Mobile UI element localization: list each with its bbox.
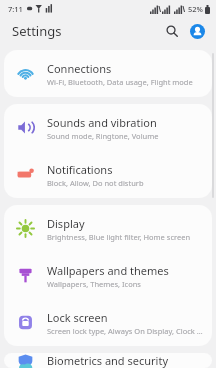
staticText: 52%: [188, 4, 203, 14]
staticText: Block, Allow, Do not disturb: [47, 178, 144, 188]
button[interactable]: Notifications: [4, 151, 212, 198]
button[interactable]: Account: [186, 20, 208, 42]
staticText: Sounds and vibration: [47, 115, 157, 130]
staticText: Notifications: [47, 162, 113, 177]
button[interactable]: Display: [4, 205, 212, 252]
staticText: Biometrics and security: [47, 353, 168, 368]
button[interactable]: Sounds and vibration: [4, 104, 212, 151]
button[interactable]: Connections: [4, 50, 212, 97]
button[interactable]: Biometrics and security: [4, 353, 212, 368]
staticText: Wallpapers, Themes, Icons: [47, 279, 141, 289]
staticText: Settings: [12, 22, 62, 40]
staticText: Sound mode, Ringtone, Volume: [47, 131, 159, 141]
staticText: Brightness, Blue light filter, Home scre…: [47, 232, 191, 242]
button[interactable]: Lock screen: [4, 299, 212, 346]
staticText: Display: [47, 216, 85, 231]
button[interactable]: Wallpapers and themes: [4, 252, 212, 299]
staticText: Wallpapers and themes: [47, 263, 169, 278]
staticText: Screen lock type, Always On Display, Clo…: [47, 326, 204, 336]
staticText: 7:11: [8, 4, 23, 14]
button[interactable]: Search: [161, 20, 183, 42]
staticText: Lock screen: [47, 310, 108, 325]
staticText: Connections: [47, 61, 112, 76]
staticText: Wi-Fi, Bluetooth, Data usage, Flight mod…: [47, 77, 193, 87]
